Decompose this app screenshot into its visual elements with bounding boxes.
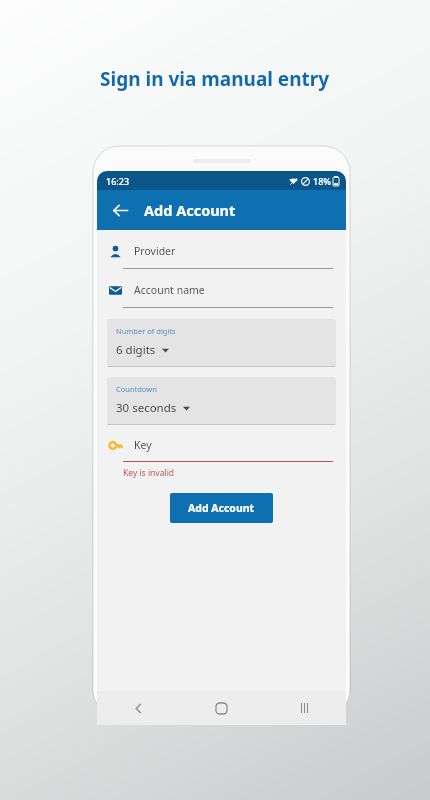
- staticText: 6 digits: [116, 342, 156, 358]
- staticText: Key is invalid: [123, 467, 175, 479]
- staticText: Account name: [134, 283, 205, 297]
- staticText: Countdown: [116, 384, 157, 394]
- button[interactable]: Recent apps: [263, 691, 346, 725]
- button[interactable]: Provider: [97, 244, 346, 269]
- staticText: 16:23: [106, 175, 130, 187]
- button[interactable]: Back: [97, 691, 180, 725]
- button[interactable]: Countdown: [107, 377, 336, 425]
- staticText: Sign in via manual entry: [100, 66, 330, 92]
- button[interactable]: Back: [105, 195, 135, 225]
- staticText: 30 seconds: [116, 400, 177, 416]
- button[interactable]: Number of digits: [107, 319, 336, 367]
- staticText: Key: [134, 438, 152, 452]
- button[interactable]: Add Account: [170, 493, 273, 523]
- button[interactable]: Account name: [97, 283, 346, 308]
- button[interactable]: Key: [109, 438, 333, 452]
- staticText: Number of digits: [116, 326, 176, 336]
- staticText: Add Account: [188, 501, 255, 515]
- staticText: 18%: [313, 175, 331, 187]
- button[interactable]: Home: [180, 691, 263, 725]
- staticText: Add Account: [144, 200, 236, 220]
- staticText: Provider: [134, 244, 176, 258]
